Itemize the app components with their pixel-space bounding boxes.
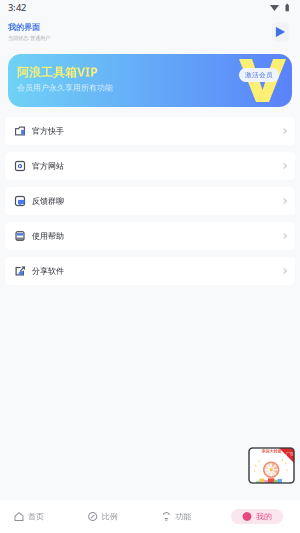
staticText: 分享软件 bbox=[32, 266, 64, 276]
staticText: 3:42 bbox=[8, 1, 26, 14]
button[interactable]: 分享软件 bbox=[5, 257, 295, 285]
button[interactable]: 比例 bbox=[84, 509, 122, 524]
staticText: 官方快手 bbox=[32, 126, 64, 136]
button[interactable]: 我的 bbox=[231, 509, 283, 524]
staticText: 比例 bbox=[102, 512, 118, 521]
button[interactable]: 首页 bbox=[10, 509, 48, 524]
staticText: 反馈群聊 bbox=[32, 196, 64, 206]
button[interactable]: Advertisement bbox=[249, 448, 294, 483]
staticText: 我的界面 bbox=[8, 22, 40, 32]
staticText: 首页 bbox=[28, 512, 44, 521]
staticText: 激活会员 bbox=[245, 71, 273, 79]
button[interactable]: 激活会员 bbox=[239, 68, 279, 82]
staticText: 功能 bbox=[175, 512, 191, 521]
staticText: 幸运大转盘 bbox=[261, 449, 281, 454]
staticText: 当前状态: 普通用户 bbox=[8, 34, 50, 41]
staticText: 我的 bbox=[256, 512, 272, 521]
button[interactable]: 使用帮助 bbox=[5, 222, 295, 250]
button[interactable]: Play bbox=[272, 22, 289, 41]
staticText: 使用帮助 bbox=[32, 231, 64, 241]
staticText: 阿浪工具箱VIP bbox=[17, 64, 97, 80]
staticText: 广告 bbox=[286, 451, 294, 456]
button[interactable]: 官方网站 bbox=[5, 152, 295, 180]
staticText: 官方网站 bbox=[32, 161, 64, 171]
button[interactable]: 功能 bbox=[157, 509, 195, 524]
button[interactable]: 官方快手 bbox=[5, 117, 295, 145]
button[interactable]: 反馈群聊 bbox=[5, 187, 295, 215]
staticText: 会员用户永久享用所有功能 bbox=[17, 83, 113, 93]
